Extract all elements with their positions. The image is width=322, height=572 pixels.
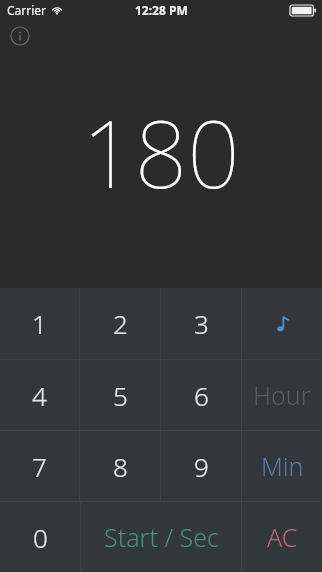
staticText: 180	[0, 90, 322, 215]
button[interactable]: 6	[161, 360, 241, 430]
staticText: 4	[32, 378, 47, 413]
button[interactable]: 9	[161, 431, 241, 501]
button[interactable]: AC	[242, 502, 322, 572]
button[interactable]: Info	[8, 24, 32, 48]
button[interactable]: Sound	[242, 288, 322, 359]
staticText: 12:28 PM	[135, 2, 188, 18]
button[interactable]: 1	[0, 288, 79, 359]
button[interactable]: 2	[80, 288, 160, 359]
button[interactable]: Min	[242, 431, 322, 501]
button[interactable]: 8	[80, 431, 160, 501]
staticText: 5	[113, 378, 128, 413]
button[interactable]: 7	[0, 431, 79, 501]
button[interactable]: 0	[0, 502, 80, 572]
staticText: 8	[113, 449, 128, 484]
button[interactable]: Hour	[242, 360, 322, 430]
staticText: Hour	[253, 378, 311, 412]
staticText: 2	[113, 306, 128, 341]
staticText: 7	[32, 449, 47, 484]
button[interactable]: Start / Sec	[81, 502, 241, 572]
staticText: 1	[32, 306, 47, 341]
button[interactable]: 5	[80, 360, 160, 430]
staticText: Min	[261, 449, 304, 483]
staticText: Start / Sec	[104, 520, 219, 554]
staticText: 6	[194, 378, 209, 413]
staticText: AC	[267, 520, 298, 554]
staticText: 0	[33, 520, 48, 555]
button[interactable]: 4	[0, 360, 79, 430]
staticText: 3	[194, 306, 209, 341]
button[interactable]: 3	[161, 288, 241, 359]
staticText: 9	[194, 449, 209, 484]
staticText: Carrier	[7, 2, 47, 18]
